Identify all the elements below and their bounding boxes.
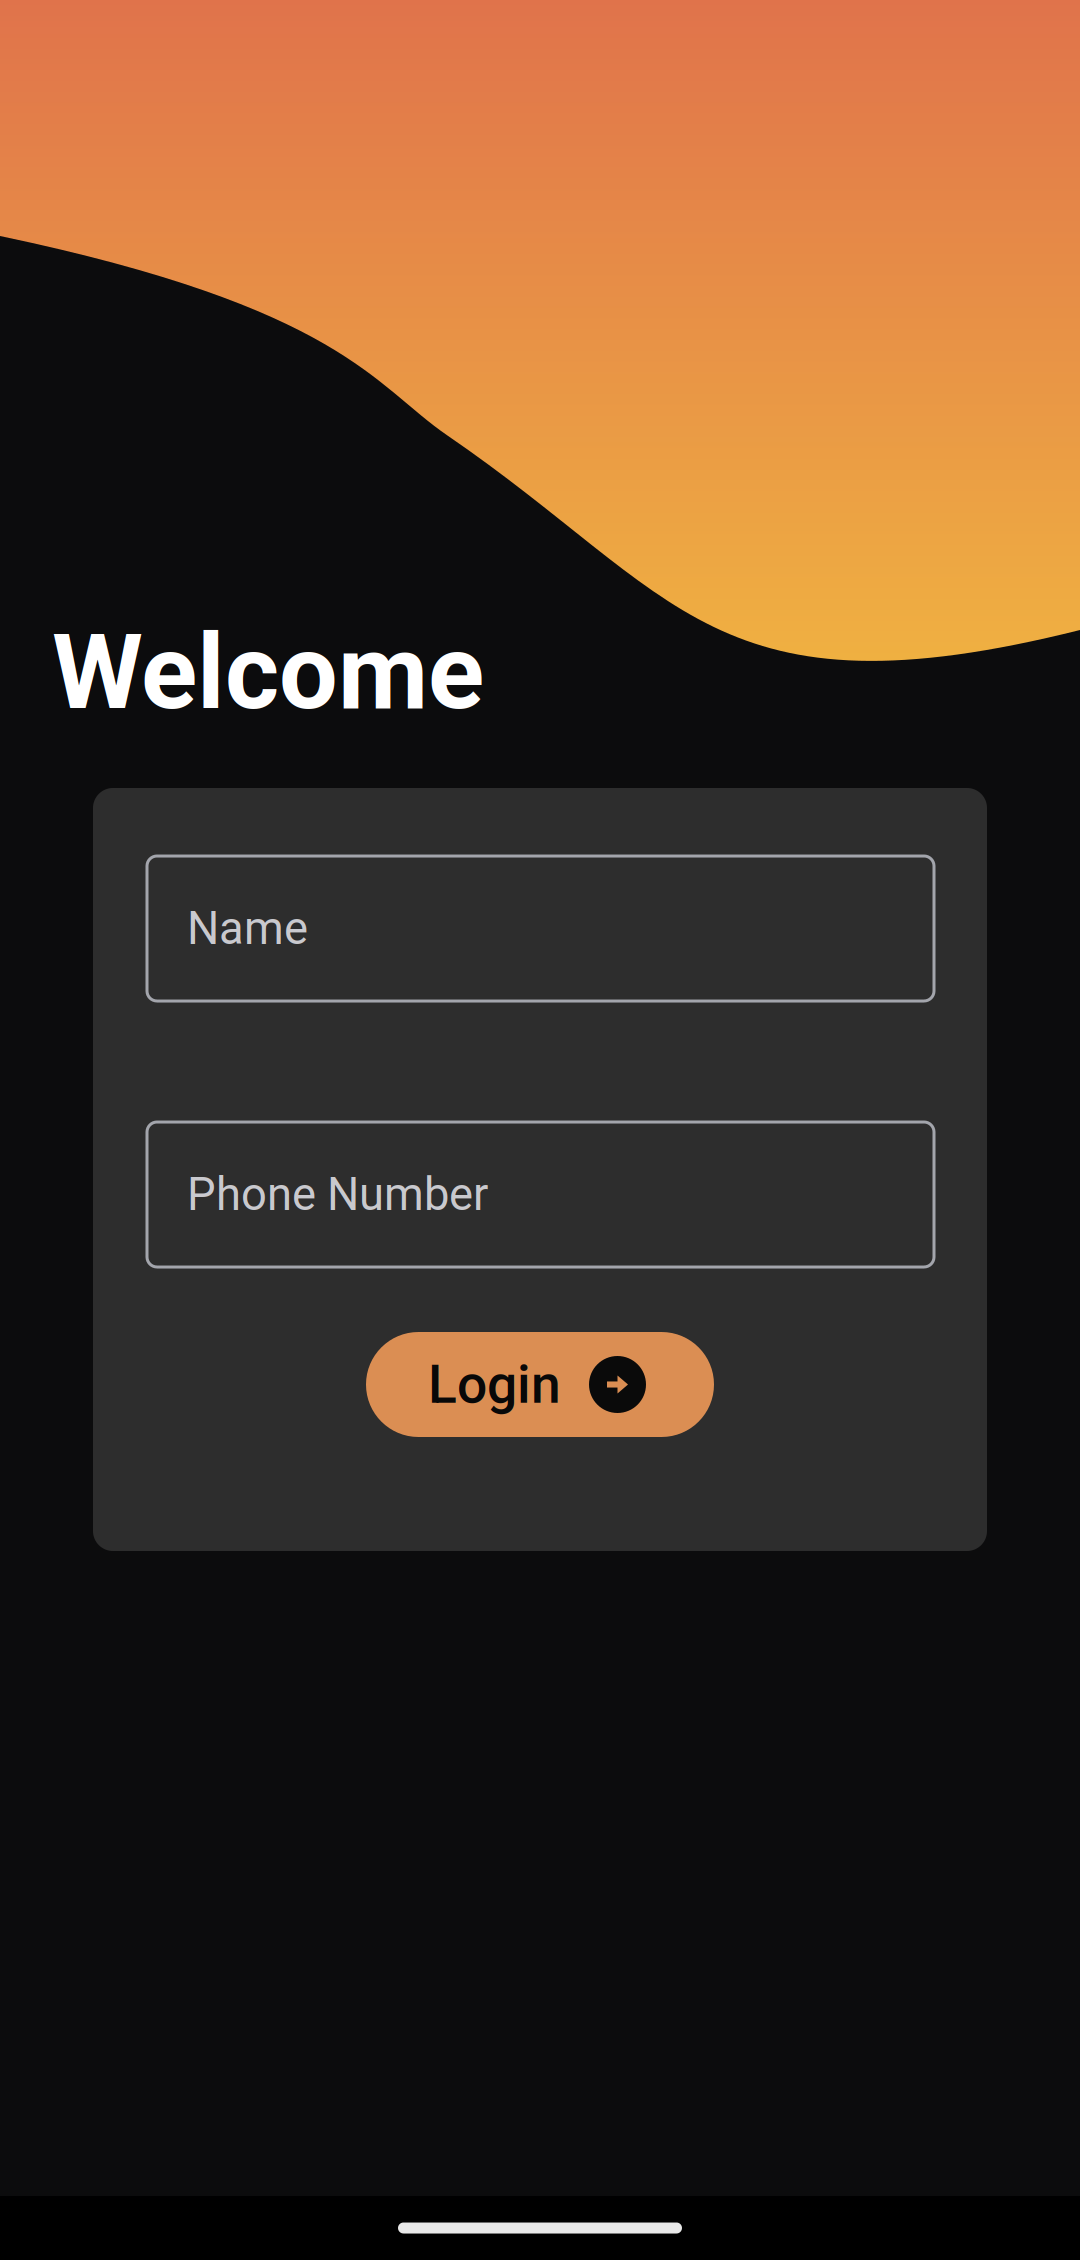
staticText: Phone Number (187, 1168, 488, 1221)
button[interactable]: Phone Number (147, 1122, 934, 1267)
staticText: Name (187, 902, 308, 955)
staticText: Login (428, 1353, 561, 1416)
button[interactable]: Name (147, 856, 934, 1001)
staticText: Welcome (52, 612, 484, 733)
button[interactable]: Login (366, 1332, 714, 1437)
